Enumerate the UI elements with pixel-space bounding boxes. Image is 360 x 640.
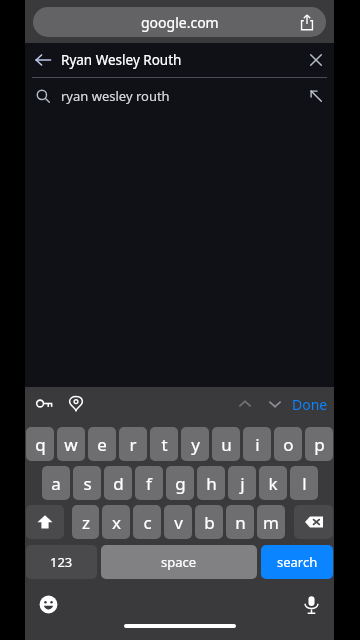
button[interactable]: c <box>133 505 161 539</box>
button[interactable]: a <box>42 466 70 500</box>
button[interactable]: space <box>101 545 257 579</box>
staticText: q <box>35 433 46 456</box>
button[interactable]: Addresses <box>61 389 91 419</box>
staticText: z <box>82 511 90 534</box>
button[interactable]: e <box>88 427 116 461</box>
button[interactable]: Dictation <box>294 587 328 621</box>
staticText: s <box>83 472 92 495</box>
button[interactable]: Previous field <box>230 389 260 419</box>
button[interactable]: n <box>226 505 254 539</box>
staticText: a <box>51 472 61 495</box>
button[interactable]: Backspace <box>294 505 333 539</box>
staticText: m <box>263 511 279 534</box>
button[interactable]: Passwords <box>27 387 61 420</box>
button[interactable]: Shift <box>26 505 64 539</box>
button[interactable]: l <box>290 466 318 500</box>
button[interactable]: Clear <box>298 43 334 77</box>
button[interactable]: z <box>72 505 99 539</box>
staticText: t <box>161 433 168 456</box>
staticText: u <box>221 433 232 456</box>
button[interactable]: ryan wesley routh <box>25 78 334 114</box>
staticText: c <box>143 511 152 534</box>
button[interactable]: search <box>261 545 333 579</box>
staticText: space <box>161 553 197 571</box>
button[interactable]: t <box>150 427 178 461</box>
staticText: n <box>235 511 246 534</box>
staticText: j <box>240 472 245 495</box>
button[interactable]: Back <box>25 43 61 77</box>
staticText: i <box>255 433 260 456</box>
staticText: Done <box>292 395 328 414</box>
button[interactable]: k <box>259 466 287 500</box>
button[interactable]: d <box>104 466 132 500</box>
staticText: d <box>113 472 124 495</box>
staticText: o <box>283 433 294 456</box>
staticText: h <box>206 472 217 495</box>
staticText: k <box>268 472 278 495</box>
button[interactable]: o <box>274 427 302 461</box>
button[interactable]: m <box>257 505 285 539</box>
button[interactable]: 123 <box>26 545 97 579</box>
staticText: ryan wesley routh <box>61 87 298 105</box>
button[interactable]: v <box>164 505 192 539</box>
button[interactable]: g <box>166 466 194 500</box>
staticText: p <box>314 433 325 456</box>
staticText: google.com <box>141 13 219 32</box>
staticText: e <box>97 433 107 456</box>
staticText: l <box>302 472 307 495</box>
button[interactable]: x <box>102 505 130 539</box>
button[interactable]: u <box>212 427 240 461</box>
button[interactable]: p <box>305 427 333 461</box>
button[interactable]: b <box>195 505 223 539</box>
staticText: Ryan Wesley Routh <box>61 51 298 69</box>
staticText: search <box>277 553 318 571</box>
button[interactable]: Back <box>25 43 334 77</box>
staticText: f <box>146 472 152 495</box>
button[interactable]: q <box>26 427 54 461</box>
button[interactable]: y <box>181 427 209 461</box>
button[interactable]: w <box>57 427 85 461</box>
staticText: w <box>64 433 78 456</box>
button[interactable]: r <box>119 427 147 461</box>
button[interactable]: i <box>243 427 271 461</box>
staticText: v <box>174 511 183 534</box>
staticText: r <box>129 433 137 456</box>
button[interactable]: f <box>135 466 163 500</box>
staticText: 123 <box>50 553 73 571</box>
staticText: x <box>112 511 121 534</box>
button[interactable]: h <box>197 466 225 500</box>
button[interactable]: Fill query <box>298 78 334 114</box>
button[interactable]: Emoji <box>31 587 65 621</box>
button[interactable]: j <box>228 466 256 500</box>
button[interactable]: Share <box>294 9 320 35</box>
staticText: y <box>191 433 200 456</box>
button[interactable]: Next field <box>260 389 290 419</box>
button[interactable]: s <box>73 466 101 500</box>
staticText: b <box>204 511 215 534</box>
button[interactable]: Done <box>292 390 328 418</box>
staticText: g <box>175 472 186 495</box>
button[interactable]: google.com <box>33 7 326 37</box>
